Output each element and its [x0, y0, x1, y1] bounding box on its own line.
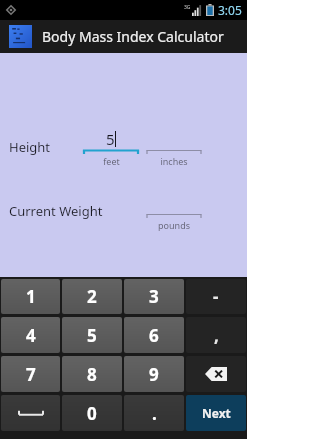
staticText: 9: [149, 363, 159, 386]
staticText: 6: [149, 324, 159, 347]
button[interactable]: Delete: [186, 356, 246, 392]
button[interactable]: pounds: [145, 193, 203, 231]
button[interactable]: 5: [62, 317, 122, 353]
staticText: 1: [26, 285, 36, 308]
button[interactable]: 6: [124, 317, 184, 353]
staticText: pounds: [158, 219, 190, 231]
button[interactable]: 8: [62, 356, 122, 392]
staticText: 8: [87, 363, 97, 386]
staticText: .: [152, 402, 157, 425]
button[interactable]: 2: [62, 279, 122, 314]
button[interactable]: 1: [1, 279, 60, 314]
staticText: Height: [9, 138, 51, 156]
staticText: feet: [103, 155, 120, 167]
staticText: 4: [26, 324, 36, 347]
button[interactable]: 5: [82, 129, 140, 167]
staticText: 0: [87, 402, 97, 425]
button[interactable]: App icon: [9, 25, 32, 48]
staticText: ,: [214, 324, 219, 347]
staticText: 3: [149, 285, 159, 308]
button[interactable]: 9: [124, 356, 184, 392]
staticText: Body Mass Index Calculator: [42, 27, 224, 46]
staticText: Current Weight: [9, 202, 103, 220]
button[interactable]: 0: [62, 395, 122, 431]
button[interactable]: ,: [186, 317, 246, 353]
staticText: 3:05: [218, 2, 242, 18]
button[interactable]: Next: [186, 395, 246, 431]
staticText: -: [213, 285, 219, 308]
staticText: 7: [26, 363, 36, 386]
staticText: 5: [106, 129, 115, 149]
button[interactable]: -: [186, 279, 246, 314]
staticText: inches: [160, 155, 188, 167]
button[interactable]: inches: [145, 129, 203, 167]
staticText: 2: [87, 285, 97, 308]
button[interactable]: 3: [124, 279, 184, 314]
staticText: 5: [87, 324, 97, 347]
button[interactable]: 4: [1, 317, 60, 353]
button[interactable]: .: [124, 395, 184, 431]
staticText: 3G: [184, 4, 191, 11]
button[interactable]: 7: [1, 356, 60, 392]
button[interactable]: Space: [1, 395, 60, 431]
staticText: Next: [202, 405, 231, 421]
